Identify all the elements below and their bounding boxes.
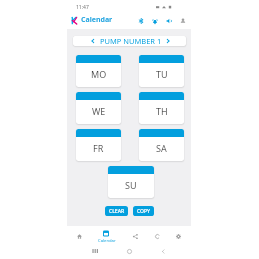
button[interactable]: COPY: [133, 206, 154, 216]
button[interactable]: Home: [124, 246, 134, 256]
button[interactable]: Sync: [148, 226, 166, 243]
button[interactable]: Home: [70, 226, 88, 243]
staticText: WE: [92, 105, 106, 117]
button[interactable]: Alarm: [151, 17, 159, 25]
button[interactable]: SU: [108, 166, 154, 198]
button[interactable]: Recents: [90, 246, 100, 256]
staticText: SU: [125, 179, 137, 191]
button[interactable]: Account: [179, 17, 187, 25]
button[interactable]: PUMP NUMBER 1: [73, 36, 186, 46]
button[interactable]: Share: [126, 226, 144, 243]
button[interactable]: TU: [139, 55, 184, 87]
staticText: Calendar: [81, 15, 113, 25]
button[interactable]: MO: [76, 55, 121, 87]
button[interactable]: WE: [76, 92, 121, 124]
button[interactable]: CLEAR: [105, 206, 128, 216]
staticText: MO: [91, 68, 107, 80]
staticText: SA: [156, 142, 167, 154]
staticText: CLEAR: [109, 208, 125, 215]
staticText: 11:47: [76, 4, 89, 11]
staticText: TU: [156, 68, 168, 80]
staticText: Calendar: [98, 238, 116, 244]
button[interactable]: Bluetooth: [137, 17, 145, 25]
staticText: PUMP NUMBER 1: [100, 36, 162, 46]
staticText: FR: [93, 142, 104, 154]
button[interactable]: TH: [139, 92, 184, 124]
button[interactable]: SA: [139, 129, 184, 161]
staticText: TH: [156, 105, 168, 117]
staticText: COPY: [137, 208, 150, 215]
button[interactable]: FR: [76, 129, 121, 161]
button[interactable]: Back: [158, 246, 168, 256]
button[interactable]: Volume: [165, 17, 173, 25]
button[interactable]: Calendar: [96, 226, 118, 243]
button[interactable]: Settings: [169, 226, 187, 243]
